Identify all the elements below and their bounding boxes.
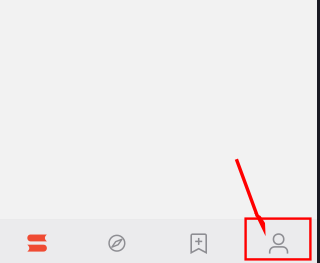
button[interactable]: Home [0, 220, 80, 263]
button[interactable]: Explore [80, 220, 160, 263]
button[interactable]: Saved [160, 220, 240, 263]
button[interactable]: You [240, 220, 320, 263]
